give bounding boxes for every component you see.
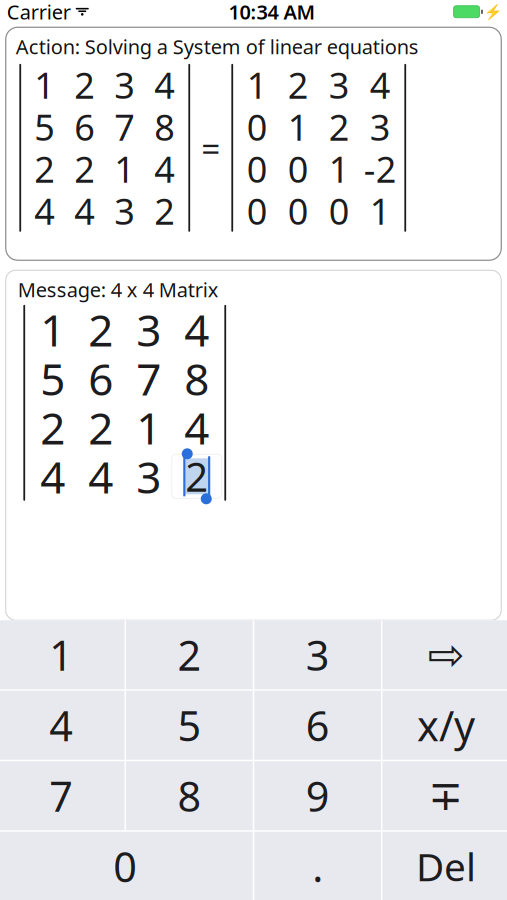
staticText: 6	[88, 349, 113, 407]
staticText: 4	[370, 61, 391, 109]
staticText: 4	[154, 145, 175, 193]
button[interactable]: 6	[254, 691, 381, 760]
staticText: 2	[329, 103, 350, 151]
staticText: 3	[306, 627, 330, 682]
staticText: 5	[177, 698, 201, 753]
staticText: 5	[34, 103, 55, 151]
staticText: 7	[136, 349, 161, 407]
button[interactable]: 0	[0, 832, 253, 900]
button[interactable]: Decimal point	[254, 832, 381, 900]
staticText: 2	[34, 145, 55, 193]
staticText: 3	[136, 447, 161, 505]
staticText: 4	[154, 61, 175, 109]
button[interactable]: Delete	[382, 832, 507, 900]
staticText: 8	[177, 768, 201, 823]
staticText: 1	[247, 61, 268, 109]
staticText: 6	[306, 698, 330, 753]
staticText: 2	[154, 187, 175, 235]
staticText: Carrier	[7, 0, 71, 25]
button[interactable]: 5	[126, 691, 253, 760]
staticText: 2	[185, 450, 208, 503]
staticText: 1	[370, 187, 391, 235]
staticText: 1	[329, 145, 350, 193]
staticText: 4	[74, 187, 95, 235]
staticText: 0	[288, 187, 309, 235]
staticText: 1	[288, 103, 309, 151]
staticText: x/y	[417, 698, 475, 753]
button[interactable]: 9	[254, 761, 381, 830]
staticText: 2	[88, 300, 113, 358]
button[interactable]: Next	[382, 620, 507, 689]
staticText: 2	[288, 61, 309, 109]
staticText: 3	[114, 61, 135, 109]
staticText: ⇨	[427, 630, 464, 680]
staticText: -2	[364, 145, 397, 193]
button[interactable]: 1	[0, 620, 125, 689]
staticText: 10:34 AM	[228, 0, 315, 25]
staticText: 2	[177, 627, 201, 682]
button[interactable]: 4	[0, 691, 125, 760]
staticText: 4	[40, 447, 65, 505]
staticText: ∓	[428, 772, 463, 819]
staticText: 2	[40, 398, 65, 456]
staticText: 8	[184, 349, 209, 407]
staticText: 4	[88, 447, 113, 505]
staticText: 3	[136, 300, 161, 358]
staticText: 9	[306, 768, 330, 823]
staticText: ⚡	[484, 3, 502, 20]
staticText: 3	[329, 61, 350, 109]
staticText: 0	[247, 103, 268, 151]
staticText: 1	[136, 398, 161, 456]
button[interactable]: 2	[126, 620, 253, 689]
staticText: Message: 4 x 4 Matrix	[18, 276, 219, 303]
staticText: 0	[247, 187, 268, 235]
staticText: 0	[329, 187, 350, 235]
staticText: 8	[154, 103, 175, 151]
staticText: 1	[34, 61, 55, 109]
staticText: .	[312, 839, 323, 894]
staticText: 4	[184, 398, 209, 456]
staticText: Action: Solving a System of linear equat…	[16, 33, 419, 60]
staticText: 7	[114, 103, 135, 151]
staticText: 2	[88, 398, 113, 456]
staticText: 2	[74, 145, 95, 193]
button[interactable]: 7	[0, 761, 125, 830]
staticText: 0	[247, 145, 268, 193]
staticText: 3	[114, 187, 135, 235]
staticText: 6	[74, 103, 95, 151]
staticText: 1	[49, 627, 73, 682]
button[interactable]: 3	[254, 620, 381, 689]
staticText: =	[201, 126, 220, 170]
staticText: 3	[370, 103, 391, 151]
button[interactable]: Minus plus sign	[382, 761, 507, 830]
staticText: 1	[114, 145, 135, 193]
button[interactable]: 8	[126, 761, 253, 830]
button[interactable]: Fraction x over y	[382, 691, 507, 760]
staticText: 5	[40, 349, 65, 407]
staticText: 0	[113, 839, 137, 894]
staticText: 4	[49, 698, 73, 753]
staticText: 2	[74, 61, 95, 109]
staticText: 1	[40, 300, 65, 358]
staticText: Del	[416, 841, 476, 892]
staticText: 4	[184, 300, 209, 358]
staticText: 4	[34, 187, 55, 235]
staticText: 7	[49, 768, 73, 823]
staticText: 0	[288, 145, 309, 193]
